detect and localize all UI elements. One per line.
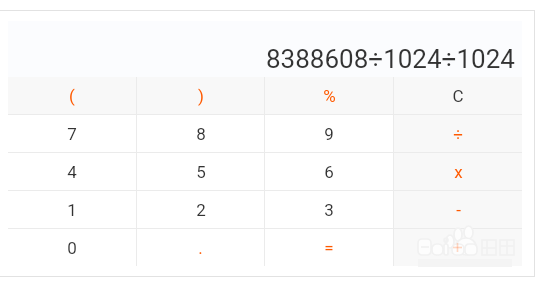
staticText: 8 xyxy=(196,124,206,144)
staticText: x xyxy=(454,162,463,182)
staticText: 8388608÷1024÷1024 xyxy=(266,44,515,74)
staticText: ÷ xyxy=(453,124,463,144)
staticText: ( xyxy=(69,86,75,106)
button[interactable]: ÷ xyxy=(394,115,522,152)
button[interactable]: x xyxy=(394,153,522,190)
button[interactable]: 1 xyxy=(8,191,136,228)
button[interactable]: 7 xyxy=(8,115,136,152)
button[interactable]: 6 xyxy=(265,153,393,190)
staticText: 9 xyxy=(324,124,334,144)
button[interactable]: 5 xyxy=(137,153,264,190)
staticText: 4 xyxy=(67,162,77,182)
button[interactable]: 4 xyxy=(8,153,136,190)
staticText: 3 xyxy=(324,200,334,220)
staticText: . xyxy=(198,238,203,258)
staticText: C xyxy=(452,86,464,106)
staticText: + xyxy=(453,238,463,258)
staticText: - xyxy=(456,200,461,220)
staticText: 6 xyxy=(324,162,334,182)
button[interactable]: % xyxy=(265,77,393,114)
staticText: 1 xyxy=(67,200,77,220)
staticText: = xyxy=(324,238,334,258)
button[interactable]: ( xyxy=(8,77,136,114)
staticText: 5 xyxy=(196,162,206,182)
staticText: ) xyxy=(198,86,204,106)
staticText: 0 xyxy=(67,238,77,258)
staticText: % xyxy=(323,86,336,106)
button[interactable]: Calculator display xyxy=(8,21,515,74)
staticText: 2 xyxy=(196,200,206,220)
button[interactable]: + xyxy=(394,229,522,266)
button[interactable]: . xyxy=(137,229,264,266)
button[interactable]: C xyxy=(394,77,522,114)
button[interactable]: - xyxy=(394,191,522,228)
staticText: 7 xyxy=(67,124,77,144)
button[interactable]: ) xyxy=(137,77,264,114)
button[interactable]: 8 xyxy=(137,115,264,152)
button[interactable]: 0 xyxy=(8,229,136,266)
button[interactable]: 9 xyxy=(265,115,393,152)
button[interactable]: 2 xyxy=(137,191,264,228)
button[interactable]: = xyxy=(265,229,393,266)
button[interactable]: 3 xyxy=(265,191,393,228)
